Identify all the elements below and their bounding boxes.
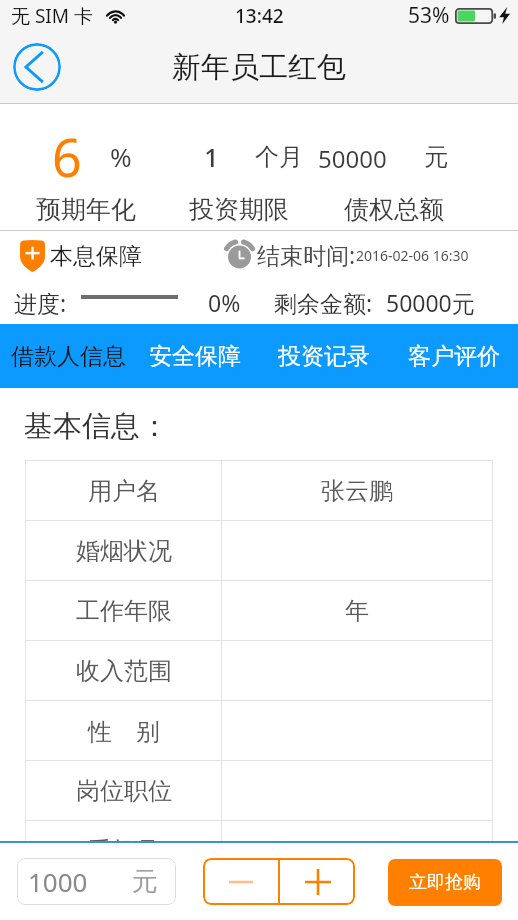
staticText: 性 别	[88, 714, 160, 747]
staticText: 客户评价	[408, 342, 500, 371]
staticText: 立即抢购	[409, 871, 481, 894]
staticText: 50000元	[386, 287, 475, 318]
staticText: 年	[345, 596, 369, 626]
staticText: 用户名	[88, 476, 160, 506]
staticText: 53%	[408, 1, 450, 30]
staticText: 新年员工红包	[172, 49, 346, 86]
button[interactable]: 客户评价	[389, 324, 518, 388]
button[interactable]: 投资记录	[259, 324, 389, 388]
staticText: 投资记录	[278, 342, 370, 371]
button[interactable]: Back	[13, 43, 61, 91]
button[interactable]: 立即抢购	[388, 859, 502, 906]
button[interactable]: Decrease	[203, 858, 278, 905]
staticText: 基本信息：	[24, 408, 169, 445]
staticText: 0%	[208, 287, 241, 318]
staticText: 安全保障	[149, 342, 241, 371]
button[interactable]: 安全保障	[136, 324, 254, 388]
staticText: 本息保障	[50, 242, 142, 271]
staticText: 预期年化	[36, 194, 136, 225]
staticText: 2016-02-06 16:30	[356, 246, 469, 265]
staticText: %	[110, 139, 132, 174]
staticText: 6	[52, 121, 82, 184]
staticText: 工作年限	[76, 596, 172, 626]
staticText: 1000	[28, 864, 88, 899]
staticText: 1	[204, 139, 219, 174]
staticText: 无 SIM 卡	[11, 3, 93, 29]
staticText: 结束时间:	[257, 239, 356, 270]
staticText: 投资期限	[189, 194, 289, 225]
button[interactable]: 借款人信息	[0, 324, 136, 388]
staticText: 张云鹏	[321, 476, 393, 506]
staticText: 元	[132, 865, 158, 898]
staticText: 岗位职位	[76, 776, 172, 806]
staticText: 收入范围	[76, 656, 172, 686]
staticText: 借款人信息	[11, 342, 126, 371]
staticText: 个月	[255, 142, 303, 172]
staticText: 50000	[318, 142, 387, 175]
staticText: 手机号	[88, 836, 160, 841]
staticText: 元	[424, 142, 448, 172]
staticText: 13:42	[235, 3, 284, 29]
button[interactable]: 1000	[17, 858, 176, 905]
staticText: 进度:	[14, 287, 67, 318]
staticText: 婚烟状况	[76, 536, 172, 566]
staticText: 债权总额	[344, 194, 444, 225]
staticText: 剩余金额:	[274, 287, 373, 318]
button[interactable]: Increase	[280, 858, 355, 905]
